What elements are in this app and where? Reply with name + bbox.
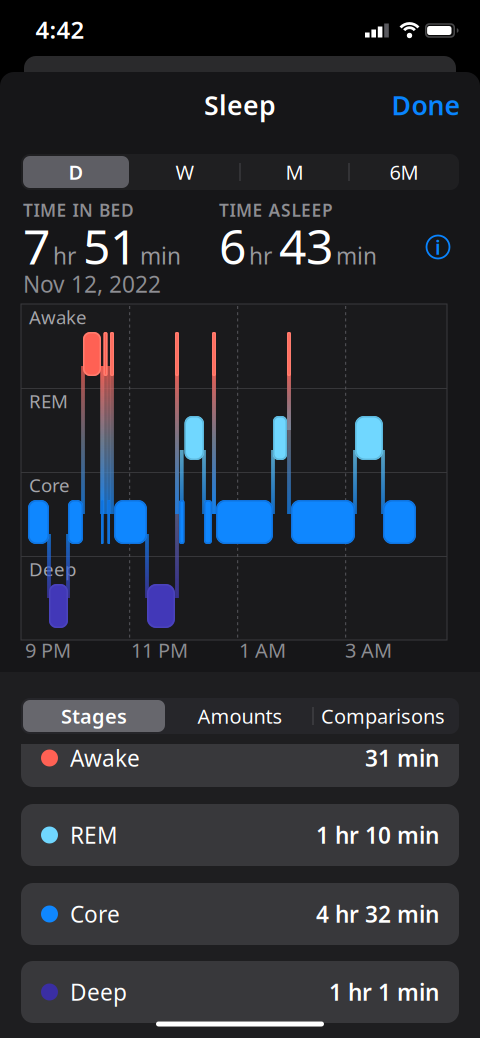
staticText: 6M — [389, 159, 418, 185]
staticText: REM — [70, 820, 118, 850]
staticText: hr — [249, 241, 272, 271]
staticText: Done — [391, 87, 460, 123]
button[interactable]: Core — [21, 883, 459, 945]
staticText: Awake — [29, 305, 87, 329]
staticText: 1 hr 1 min — [329, 977, 439, 1007]
staticText: i — [435, 234, 441, 260]
staticText: Amounts — [197, 703, 282, 729]
staticText: D — [68, 159, 83, 185]
button[interactable]: Deep — [21, 961, 459, 1023]
button[interactable]: Done — [386, 85, 466, 125]
button[interactable]: Awake — [21, 744, 459, 787]
staticText: 51 — [83, 214, 137, 278]
staticText: TIME IN BED — [23, 198, 134, 221]
staticText: Core — [70, 899, 120, 929]
staticText: Awake — [70, 743, 140, 773]
staticText: Nov 12, 2022 — [23, 269, 161, 299]
staticText: 43 — [279, 214, 333, 278]
button[interactable]: Amounts — [169, 699, 311, 733]
staticText: 9 PM — [25, 637, 71, 663]
staticText: 1 AM — [239, 637, 286, 663]
button[interactable]: D — [23, 155, 129, 189]
staticText: W — [175, 159, 194, 185]
staticText: min — [336, 241, 377, 271]
staticText: 1 hr 10 min — [316, 820, 439, 850]
staticText: Stages — [61, 703, 127, 729]
staticText: REM — [29, 389, 68, 413]
staticText: 4:42 — [35, 14, 84, 45]
staticText: Comparisons — [321, 703, 445, 729]
button[interactable]: 6M — [351, 155, 457, 189]
button[interactable]: Stages — [23, 699, 165, 733]
staticText: 7 — [23, 214, 50, 278]
staticText: 3 AM — [345, 637, 392, 663]
staticText: min — [140, 241, 181, 271]
button[interactable]: W — [132, 155, 238, 189]
staticText: Sleep — [204, 87, 276, 123]
staticText: M — [285, 159, 303, 185]
staticText: TIME ASLEEP — [219, 198, 333, 221]
staticText: 4 hr 32 min — [316, 899, 439, 929]
staticText: 6 — [219, 214, 246, 278]
button[interactable]: Comparisons — [312, 699, 454, 733]
button[interactable]: More info — [420, 229, 456, 265]
staticText: hr — [53, 241, 76, 271]
button[interactable]: REM — [21, 804, 459, 866]
button[interactable]: M — [241, 155, 347, 189]
staticText: Core — [29, 473, 70, 497]
staticText: Deep — [70, 977, 127, 1007]
staticText: 31 min — [365, 743, 439, 773]
staticText: Deep — [29, 557, 76, 581]
staticText: 11 PM — [131, 637, 188, 663]
